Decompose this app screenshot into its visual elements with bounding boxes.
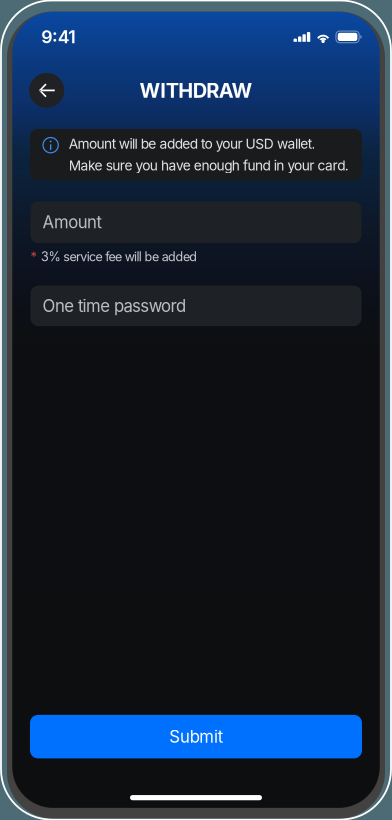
button[interactable]: Submit xyxy=(30,715,362,758)
staticText: Submit xyxy=(169,726,223,747)
staticText: One time password xyxy=(42,296,186,316)
staticText: Amount will be added to your USD wallet. xyxy=(69,135,315,152)
button[interactable]: One time password xyxy=(30,286,361,326)
staticText: 3% service fee will be added xyxy=(41,249,197,264)
staticText: 9:41 xyxy=(41,26,75,48)
staticText: WITHDRAW xyxy=(140,78,252,102)
staticText: Amount xyxy=(42,212,101,232)
button[interactable]: Amount xyxy=(30,201,361,243)
staticText: Make sure you have enough fund in your c… xyxy=(69,157,349,174)
staticText: * xyxy=(30,249,37,265)
button[interactable]: Back xyxy=(29,73,64,108)
